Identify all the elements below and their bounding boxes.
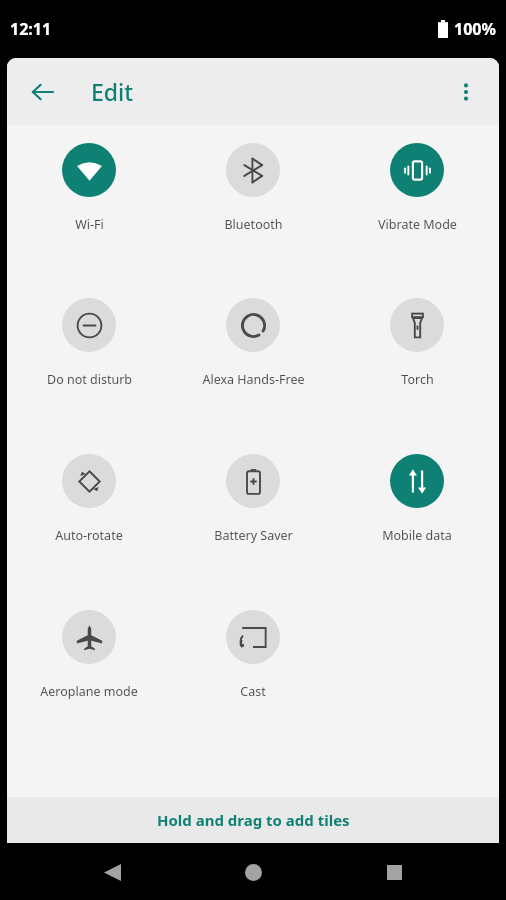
button[interactable]: Back <box>92 852 132 892</box>
staticText: Aeroplane mode <box>40 683 138 700</box>
staticText: 100% <box>454 18 496 40</box>
button[interactable]: Vibrate Mode <box>342 143 492 233</box>
staticText: Auto-rotate <box>55 527 123 544</box>
button[interactable]: Hold and drag to add tiles <box>7 797 499 843</box>
staticText: Alexa Hands-Free <box>202 371 305 388</box>
button[interactable]: Wi-Fi <box>14 143 164 233</box>
button[interactable]: Torch <box>342 298 492 388</box>
button[interactable]: Back <box>19 68 67 116</box>
staticText: Battery Saver <box>214 527 293 544</box>
button[interactable]: Alexa Hands-Free <box>178 298 328 388</box>
staticText: Vibrate Mode <box>378 216 457 233</box>
button[interactable]: Battery Saver <box>178 454 328 544</box>
staticText: Cast <box>240 683 266 700</box>
button[interactable]: Home <box>233 852 273 892</box>
button[interactable]: Do not disturb <box>14 298 164 388</box>
button[interactable]: Cast <box>178 610 328 700</box>
staticText: Edit <box>91 76 134 107</box>
button[interactable]: Auto-rotate <box>14 454 164 544</box>
staticText: Mobile data <box>382 527 452 544</box>
button[interactable]: Recent apps <box>374 852 414 892</box>
button[interactable]: Mobile data <box>342 454 492 544</box>
staticText: 12:11 <box>10 18 52 40</box>
staticText: Wi-Fi <box>75 216 104 233</box>
staticText: Bluetooth <box>224 216 283 233</box>
staticText: Do not disturb <box>47 371 132 388</box>
staticText: Hold and drag to add tiles <box>157 810 350 830</box>
button[interactable]: Aeroplane mode <box>14 610 164 700</box>
button[interactable]: Bluetooth <box>178 143 328 233</box>
staticText: Torch <box>401 371 434 388</box>
button[interactable]: More options <box>443 69 489 115</box>
